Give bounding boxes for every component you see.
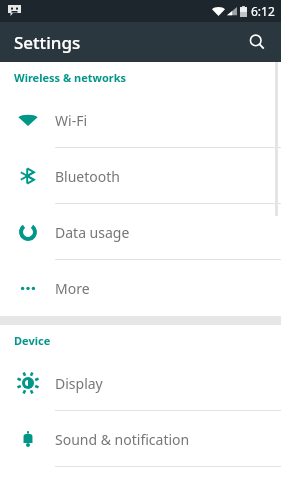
staticText: Device [14,333,51,348]
button[interactable]: Sound & notification [0,411,281,467]
staticText: Display [55,374,103,393]
staticText: 6:12 [251,3,275,19]
staticText: Settings [14,31,81,54]
button[interactable]: Display [0,355,281,411]
button[interactable]: Search [239,24,275,60]
staticText: Bluetooth [55,167,120,186]
staticText: Wireless & networks [14,70,127,85]
staticText: Data usage [55,223,130,242]
button[interactable]: Wi-Fi [0,92,281,148]
button[interactable]: Data usage [0,204,281,260]
button[interactable]: Bluetooth [0,148,281,204]
staticText: Wi-Fi [55,111,88,130]
staticText: Sound & notification [55,430,190,449]
button[interactable]: More [0,260,281,316]
staticText: More [55,279,90,298]
